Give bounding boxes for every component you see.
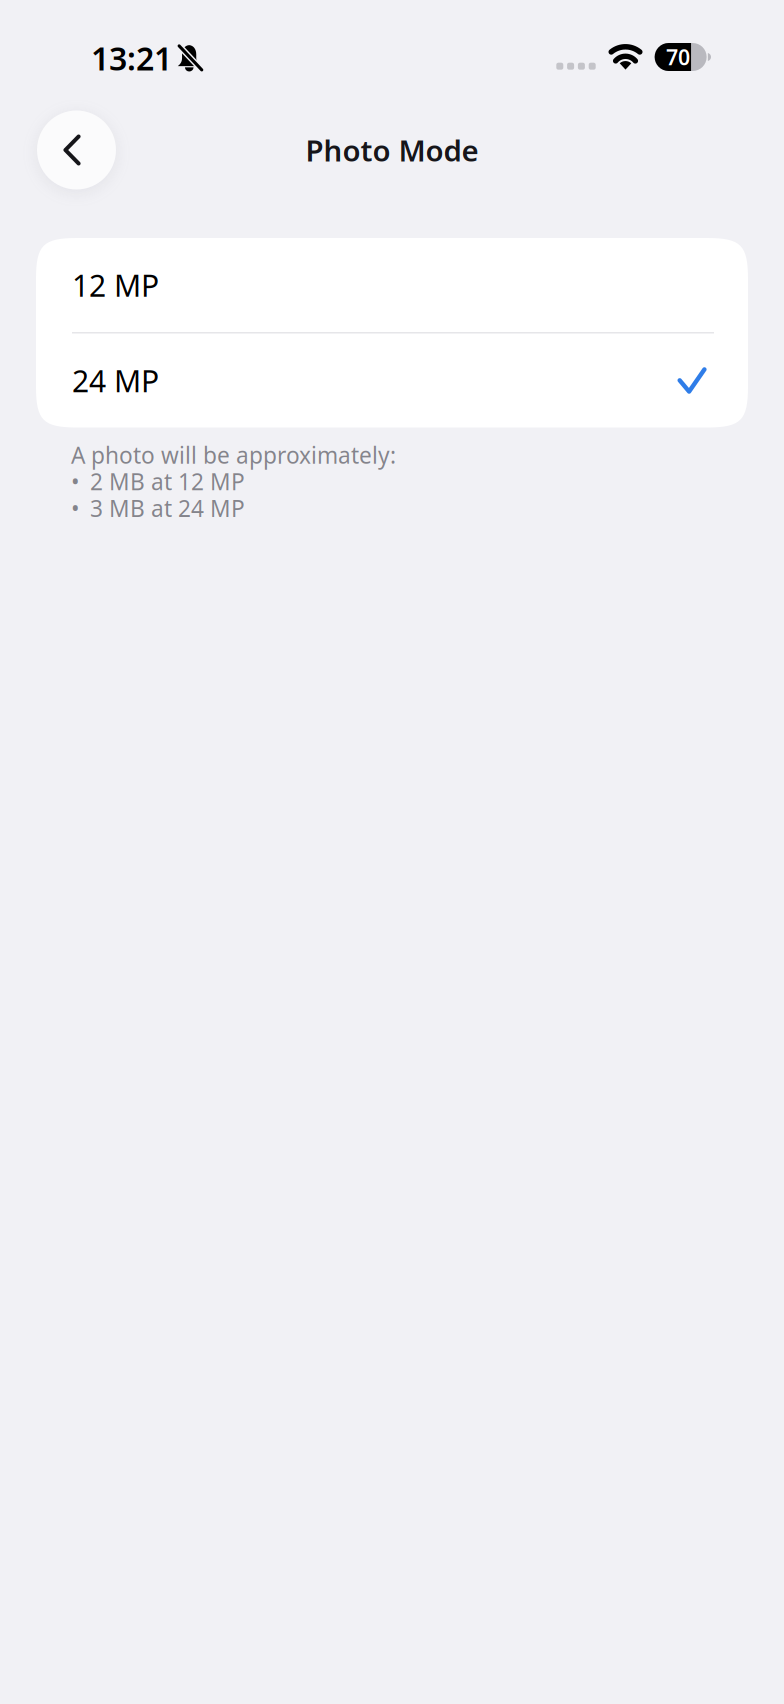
staticText: 12 MP: [72, 265, 159, 305]
button[interactable]: 24 MP: [36, 333, 748, 427]
staticText: 24 MP: [72, 361, 159, 400]
staticText: 70: [666, 43, 690, 71]
button[interactable]: Back: [37, 110, 116, 189]
staticText: Photo Mode: [305, 130, 478, 169]
staticText: • 2 MB at 12 MP: [71, 466, 245, 497]
staticText: • 3 MB at 24 MP: [71, 493, 245, 523]
staticText: A photo will be approximately:: [71, 440, 396, 470]
button[interactable]: 12 MP: [36, 238, 748, 332]
staticText: 13:21: [91, 37, 172, 79]
